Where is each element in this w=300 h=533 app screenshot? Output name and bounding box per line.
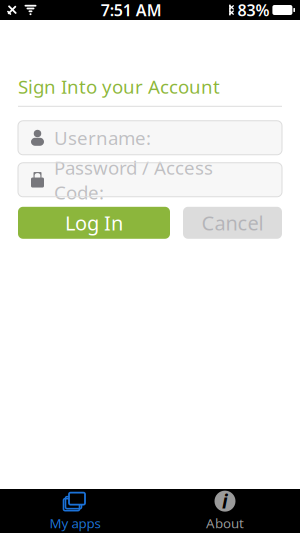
staticText: 83% — [237, 0, 269, 21]
staticText: Cancel — [201, 209, 263, 236]
staticText: Username: — [54, 125, 151, 150]
staticText: About — [206, 514, 244, 532]
button[interactable]: Log In — [18, 207, 170, 239]
staticText: 7:51 AM — [101, 0, 162, 21]
staticText: My apps — [49, 514, 100, 532]
staticText: Password / Access Code: — [54, 155, 213, 205]
button[interactable]: i — [150, 489, 300, 533]
staticText: i — [222, 489, 228, 514]
button[interactable]: Cancel — [183, 207, 282, 239]
button[interactable]: My apps — [0, 489, 150, 533]
staticText: Log In — [65, 209, 123, 236]
staticText: Sign Into your Account — [18, 74, 220, 99]
